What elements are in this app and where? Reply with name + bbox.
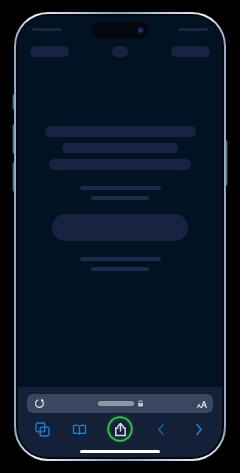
button[interactable]: Page settings [197,398,207,410]
button[interactable]: Address bar [27,394,213,413]
button[interactable]: Tabs [31,418,53,440]
button[interactable] [112,46,128,57]
button[interactable]: Bookmarks [68,418,90,440]
button[interactable]: Share [105,414,135,444]
button[interactable]: Forward [187,418,209,440]
staticText: A [197,402,201,410]
button[interactable]: Back [150,418,172,440]
staticText: A [201,398,207,410]
button[interactable] [30,46,69,57]
button[interactable] [171,46,210,57]
button[interactable]: Reload [34,398,45,409]
